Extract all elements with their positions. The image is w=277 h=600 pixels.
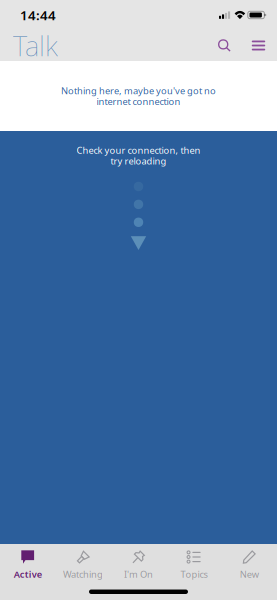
staticText: Active	[14, 568, 42, 580]
staticText: 14:44	[20, 6, 56, 24]
button[interactable]: Topics	[166, 544, 222, 577]
staticText: Nothing here, maybe you've got no	[61, 84, 216, 97]
button[interactable]: Menu	[241, 30, 275, 61]
staticText: Talk	[13, 27, 58, 64]
button[interactable]: I'm On	[111, 544, 166, 577]
button[interactable]: Watching	[55, 544, 111, 577]
staticText: Watching	[63, 568, 103, 580]
staticText: New	[240, 568, 259, 580]
staticText: I'm On	[124, 568, 153, 580]
button[interactable]: New	[222, 544, 277, 577]
button[interactable]: Search	[207, 30, 241, 61]
staticText: internet connection	[96, 95, 180, 108]
staticText: Topics	[180, 568, 207, 580]
staticText: try reloading	[110, 155, 166, 167]
staticText: Check your connection, then	[76, 144, 200, 156]
button[interactable]: Active	[0, 544, 55, 577]
